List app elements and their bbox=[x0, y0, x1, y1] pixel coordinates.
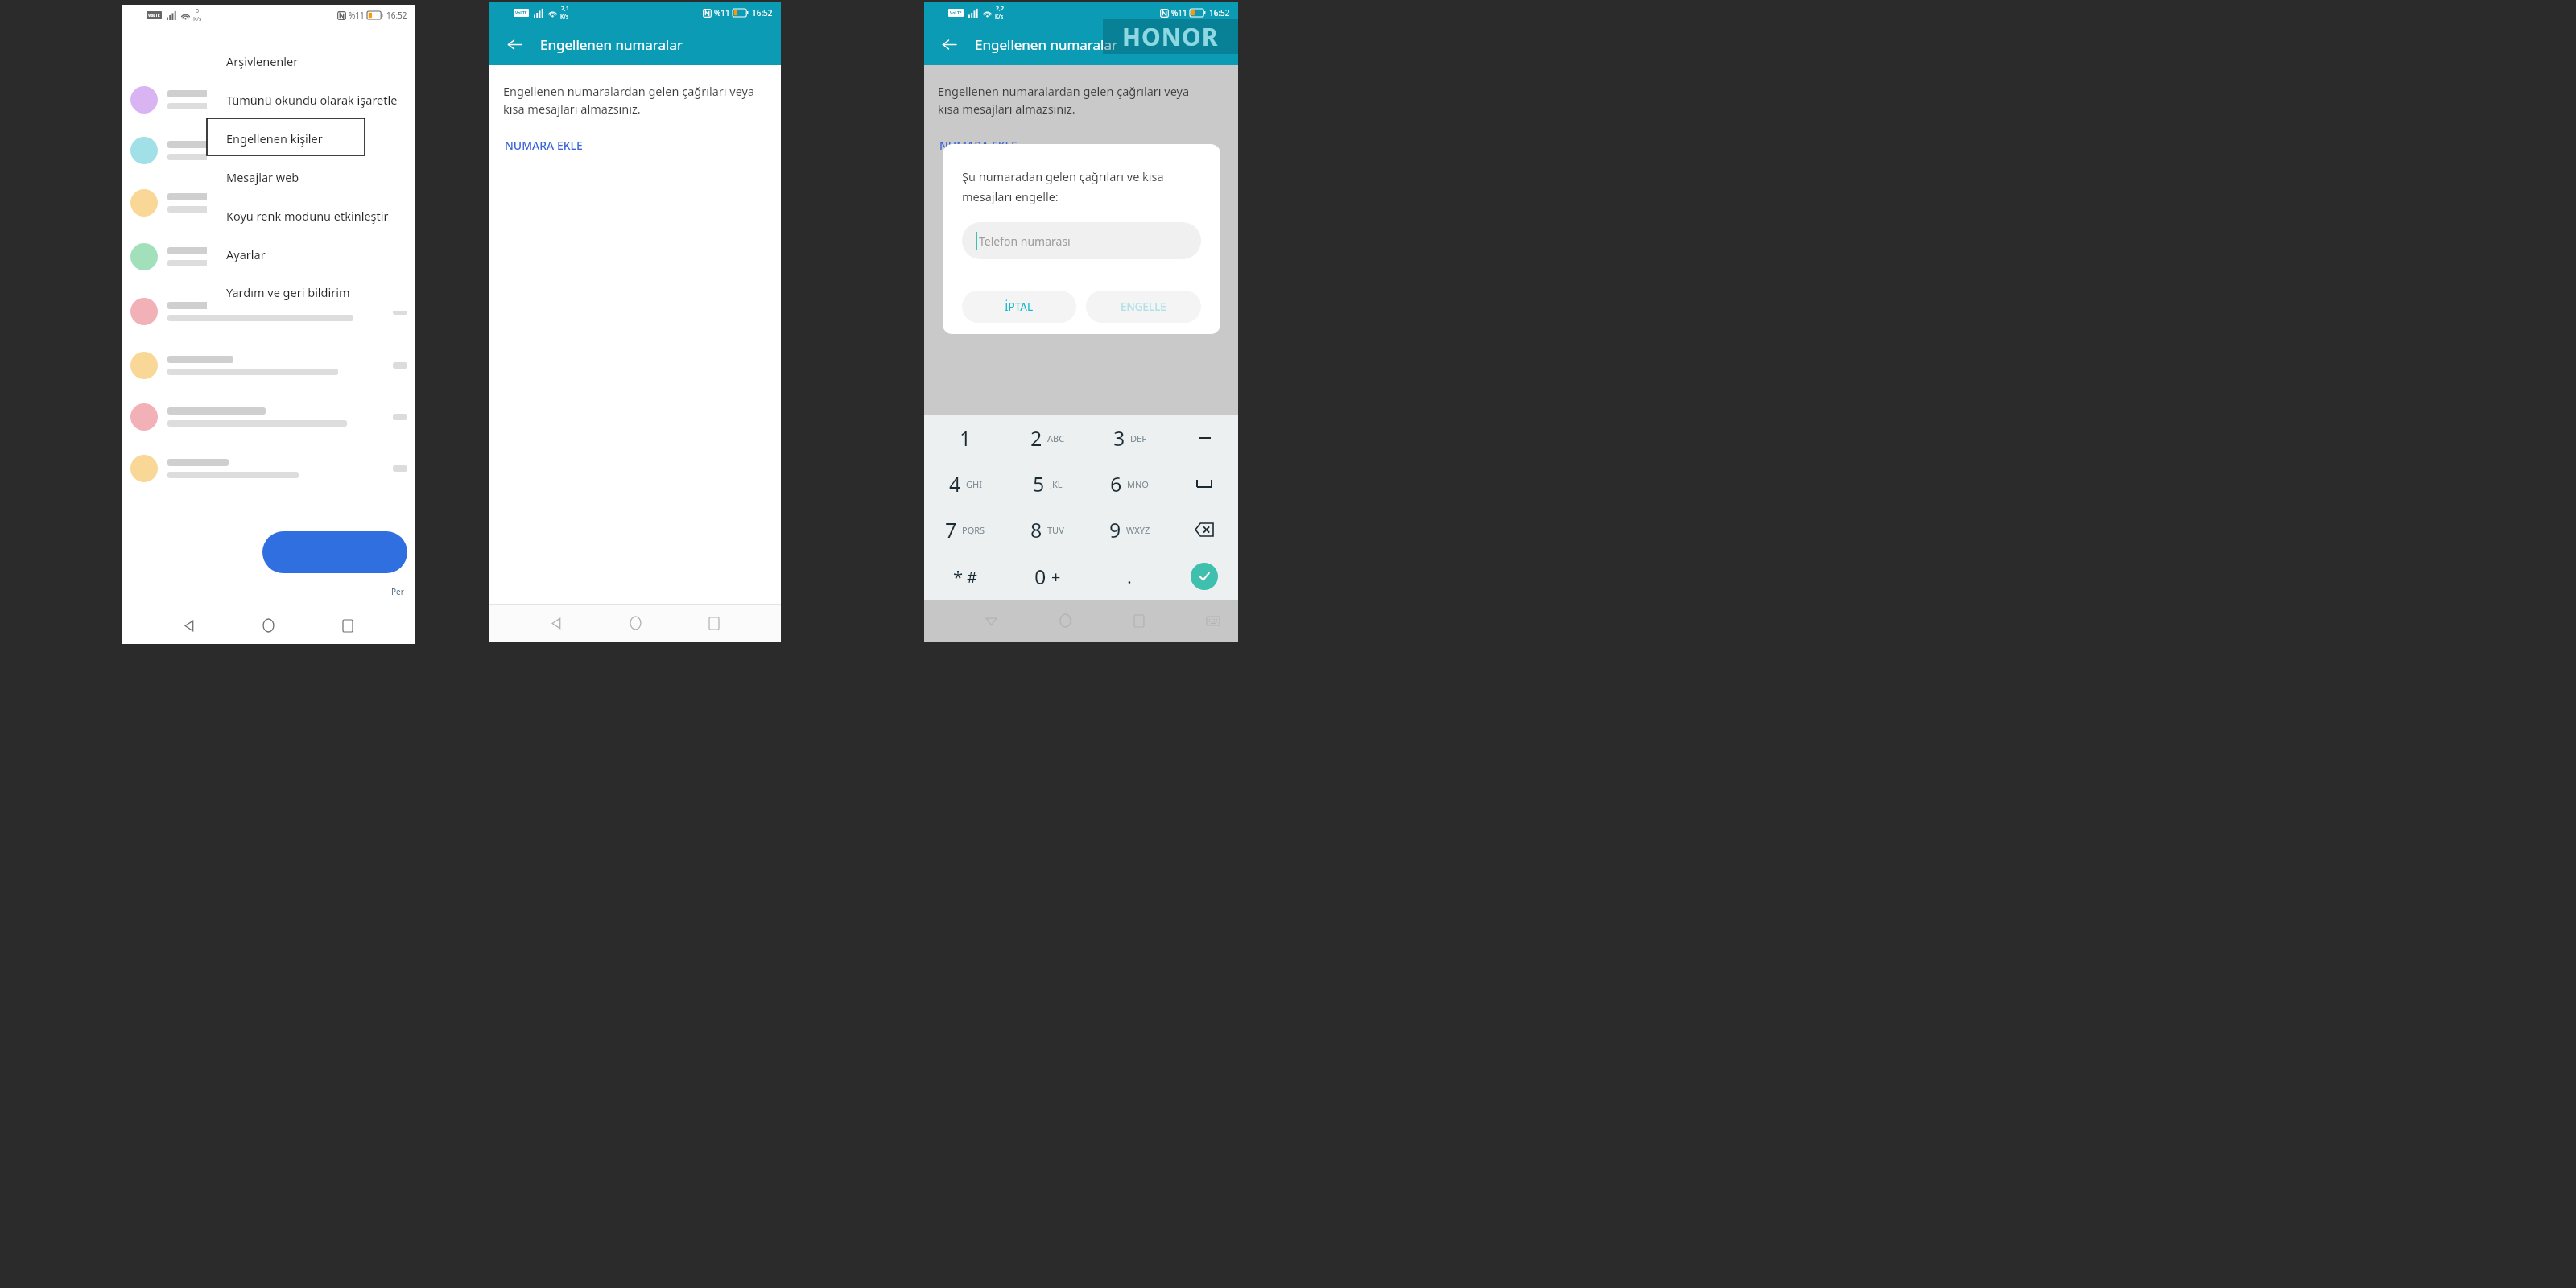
staticText: Engellenen numaralardan gelen çağrıları … bbox=[938, 83, 1190, 117]
button[interactable]: 7 bbox=[924, 506, 1006, 553]
staticText: 2,1 bbox=[561, 5, 569, 13]
staticText: Koyu renk modunu etkinleştir bbox=[226, 208, 389, 224]
button[interactable]: Home bbox=[623, 611, 647, 635]
button[interactable]: İPTAL bbox=[962, 291, 1076, 323]
button[interactable]: Recents bbox=[1127, 609, 1151, 633]
button[interactable]: Dash bbox=[1170, 415, 1238, 460]
button[interactable]: Ayarlar bbox=[207, 235, 415, 274]
button[interactable]: 4 bbox=[924, 460, 1006, 506]
button[interactable]: . bbox=[1088, 553, 1170, 600]
staticText: 8 bbox=[1030, 516, 1042, 543]
button[interactable]: Home bbox=[1053, 609, 1077, 633]
button[interactable]: Space bbox=[1170, 460, 1238, 506]
staticText: Arşivlenenler bbox=[226, 53, 299, 69]
staticText: 5 bbox=[1033, 470, 1045, 497]
button[interactable]: NUMARA EKLE bbox=[503, 134, 584, 156]
staticText: K/s bbox=[560, 13, 569, 21]
staticText: + bbox=[1051, 566, 1061, 588]
staticText: 0 bbox=[1034, 563, 1046, 590]
staticText: VoLTE bbox=[148, 13, 160, 19]
staticText: Mesajlar web bbox=[226, 169, 299, 185]
staticText: Yardım ve geri bildirim bbox=[226, 284, 350, 300]
staticText: Engellenen numaralar bbox=[975, 35, 1117, 54]
staticText: İPTAL bbox=[1005, 299, 1034, 314]
button[interactable]: Yardım ve geri bildirim bbox=[207, 274, 415, 311]
staticText: MNO bbox=[1127, 478, 1149, 490]
staticText: 7 bbox=[945, 516, 957, 543]
staticText: Engellenen numaralardan gelen çağrıları … bbox=[503, 83, 755, 117]
staticText: K/s bbox=[193, 15, 202, 23]
staticText: 4 bbox=[949, 470, 961, 497]
staticText: ENGELLE bbox=[1121, 299, 1166, 314]
staticText: GHI bbox=[966, 478, 982, 490]
button[interactable]: 9 bbox=[1088, 506, 1170, 553]
staticText: %11 bbox=[349, 10, 365, 21]
button[interactable]: Koyu renk modunu etkinleştir bbox=[207, 196, 415, 235]
button[interactable]: Start chat bbox=[262, 531, 407, 573]
staticText: WXYZ bbox=[1126, 524, 1150, 536]
button[interactable]: Tümünü okundu olarak işaretle bbox=[207, 80, 415, 119]
staticText: NUMARA EKLE bbox=[939, 138, 1018, 153]
button[interactable]: Engellenen kişiler bbox=[207, 119, 415, 158]
staticText: . bbox=[1127, 564, 1132, 588]
button[interactable]: 2 bbox=[1006, 415, 1088, 460]
button[interactable]: 1 bbox=[924, 415, 1006, 460]
button[interactable]: 5 bbox=[1006, 460, 1088, 506]
button[interactable]: Back bbox=[935, 31, 963, 58]
staticText: # bbox=[967, 566, 977, 588]
button[interactable]: Back bbox=[544, 611, 568, 635]
button[interactable]: ENGELLE bbox=[1086, 291, 1201, 323]
button[interactable]: 6 bbox=[1088, 460, 1170, 506]
staticText: 2 bbox=[1030, 424, 1042, 452]
button[interactable]: Recents bbox=[336, 613, 360, 638]
button[interactable]: Switch keyboard bbox=[1201, 609, 1225, 633]
staticText: VoLTE bbox=[950, 10, 962, 16]
staticText: 16:52 bbox=[752, 7, 773, 19]
staticText: Şu numaradan gelen çağrıları ve kısa mes… bbox=[962, 168, 1164, 204]
staticText: 2,2 bbox=[996, 5, 1004, 13]
staticText: 6 bbox=[1110, 470, 1122, 497]
button[interactable]: Telefon numarası bbox=[962, 222, 1201, 259]
staticText: 3 bbox=[1113, 424, 1125, 452]
button[interactable]: Backspace bbox=[1170, 506, 1238, 553]
staticText: JKL bbox=[1050, 478, 1063, 490]
staticText: Ayarlar bbox=[226, 246, 266, 262]
staticText: Per bbox=[391, 586, 404, 597]
button[interactable]: Recents bbox=[702, 611, 726, 635]
button[interactable]: Back bbox=[501, 31, 528, 58]
staticText: Tümünü okundu olarak işaretle bbox=[226, 92, 398, 108]
staticText: Telefon numarası bbox=[979, 233, 1071, 249]
staticText: 0 bbox=[196, 7, 200, 15]
button[interactable]: 8 bbox=[1006, 506, 1088, 553]
button[interactable]: 0 bbox=[1006, 553, 1088, 600]
staticText: 16:52 bbox=[386, 10, 407, 21]
staticText: 1 bbox=[960, 424, 972, 452]
staticText: NUMARA EKLE bbox=[505, 138, 583, 153]
staticText: TUV bbox=[1047, 524, 1064, 536]
button[interactable]: Back bbox=[177, 613, 201, 638]
staticText: K/s bbox=[995, 13, 1004, 21]
button[interactable]: Mesajlar web bbox=[207, 158, 415, 196]
button[interactable]: NUMARA EKLE bbox=[938, 134, 1019, 156]
staticText: 9 bbox=[1109, 516, 1121, 543]
staticText: Engellenen kişiler bbox=[226, 130, 323, 147]
button[interactable]: Home bbox=[256, 613, 280, 638]
staticText: %11 bbox=[1171, 7, 1187, 19]
staticText: DEF bbox=[1130, 432, 1146, 444]
staticText: VoLTE bbox=[515, 10, 527, 16]
button[interactable]: * bbox=[924, 553, 1006, 600]
button[interactable]: Arşivlenenler bbox=[207, 42, 415, 80]
staticText: %11 bbox=[714, 7, 730, 19]
staticText: Engellenen numaralar bbox=[540, 35, 683, 54]
button[interactable]: 3 bbox=[1088, 415, 1170, 460]
button[interactable]: Confirm bbox=[1170, 553, 1238, 600]
staticText: ABC bbox=[1047, 432, 1065, 444]
staticText: * bbox=[953, 564, 964, 588]
button[interactable]: Hide keyboard bbox=[979, 609, 1003, 633]
staticText: PQRS bbox=[962, 524, 985, 536]
staticText: 16:52 bbox=[1209, 7, 1230, 19]
staticText: HONOR bbox=[1122, 20, 1219, 53]
